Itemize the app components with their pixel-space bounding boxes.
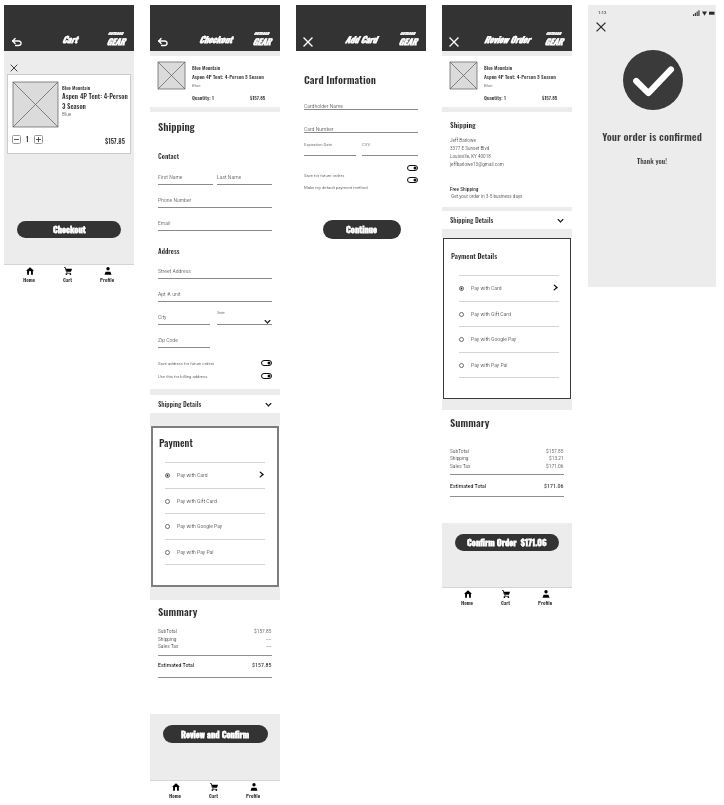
- staticText: Blue Mountain: [192, 64, 221, 71]
- staticText: 1:12: [598, 10, 607, 15]
- button[interactable]: Pay with Gift Card: [459, 301, 559, 327]
- staticText: Address: [158, 246, 180, 256]
- button[interactable]: Back: [158, 38, 168, 46]
- staticText: Apt #, unit: [158, 291, 181, 297]
- button[interactable]: Shipping Details: [442, 211, 572, 229]
- staticText: Thank you!: [637, 156, 667, 166]
- button[interactable]: Toggle: [261, 373, 272, 379]
- button[interactable]: Close: [597, 23, 605, 31]
- staticText: Save address for future orders: [158, 361, 215, 366]
- staticText: Cart: [501, 599, 511, 607]
- staticText: Pay with Pay Pal: [471, 362, 508, 368]
- staticText: $171.06: [546, 464, 564, 470]
- staticText: Cardholder Name: [304, 103, 343, 109]
- staticText: Cart: [63, 276, 73, 284]
- staticText: SubTotal: [450, 449, 469, 455]
- button[interactable]: Toggle: [407, 177, 418, 183]
- button[interactable]: Remove item: [11, 65, 17, 71]
- button[interactable]: Close: [304, 38, 312, 46]
- staticText: Continue: [346, 223, 378, 236]
- staticText: GEAR: [105, 35, 126, 47]
- staticText: Jeff Barlowe 3377 E Sunset Blvd Louisvil…: [450, 138, 504, 167]
- button[interactable]: Save address for future orders: [158, 359, 272, 367]
- button[interactable]: Toggle: [407, 165, 418, 171]
- staticText: Aspen 4P Tent: 4-Person 3 Season: [62, 91, 128, 111]
- staticText: State: [217, 311, 225, 315]
- button[interactable]: Cart: [201, 782, 227, 801]
- staticText: Zip Code: [158, 337, 178, 343]
- staticText: $171.06: [544, 483, 564, 489]
- staticText: Pay with Pay Pal: [177, 549, 214, 555]
- staticText: Shipping Details: [450, 215, 494, 225]
- button[interactable]: Home: [161, 782, 190, 801]
- staticText: First Name: [158, 174, 183, 180]
- staticText: $157.85: [546, 449, 564, 455]
- staticText: Contact: [158, 151, 179, 161]
- button[interactable]: Decrease quantity: [12, 135, 21, 144]
- button[interactable]: Profile: [92, 266, 123, 285]
- button[interactable]: Profile: [238, 782, 269, 801]
- button[interactable]: Pay with Google Pay: [459, 326, 559, 352]
- button[interactable]: Shipping Details: [150, 395, 280, 413]
- button[interactable]: Confirm Order $171.06: [455, 534, 559, 551]
- button[interactable]: Pay with Card: [165, 462, 265, 488]
- staticText: Confirm Order $171.06: [467, 536, 547, 549]
- staticText: Use this for billing address: [158, 374, 208, 379]
- staticText: $157.85: [542, 94, 558, 101]
- staticText: GEAR: [251, 35, 272, 47]
- staticText: Add Card: [345, 33, 377, 46]
- staticText: Pay with Card: [471, 285, 502, 291]
- staticText: Cart: [209, 792, 219, 800]
- button[interactable]: Home: [453, 589, 482, 608]
- staticText: Last Name: [217, 174, 242, 180]
- staticText: Pay with Google Pay: [471, 336, 517, 342]
- button[interactable]: Pay with Gift Card: [165, 488, 265, 514]
- staticText: Summary: [158, 604, 198, 619]
- staticText: ----: [266, 644, 272, 650]
- staticText: Cart: [62, 33, 77, 46]
- button[interactable]: Continue: [323, 220, 401, 239]
- staticText: Blue: [192, 83, 201, 88]
- button[interactable]: Home: [15, 266, 44, 285]
- button[interactable]: Toggle: [261, 360, 272, 366]
- staticText: $157.85: [105, 136, 125, 146]
- staticText: Checkout: [199, 33, 232, 46]
- button[interactable]: Pay with Pay Pal: [165, 539, 265, 565]
- staticText: Pay with Google Pay: [177, 523, 223, 529]
- staticText: Aspen 4P Tent: 4-Person 3 Season: [192, 73, 264, 81]
- button[interactable]: Close: [450, 38, 458, 46]
- staticText: Shipping Details: [158, 399, 202, 409]
- button[interactable]: Increase quantity: [34, 135, 43, 144]
- staticText: Home: [169, 792, 182, 800]
- staticText: $157.85: [252, 662, 272, 668]
- button[interactable]: Use this for billing address: [158, 372, 272, 380]
- staticText: OUTDOOR: [543, 31, 564, 36]
- staticText: Profile: [100, 276, 115, 284]
- staticText: Phone Number: [158, 197, 192, 203]
- button[interactable]: Pay with Pay Pal: [459, 352, 559, 378]
- button[interactable]: Cart: [493, 589, 519, 608]
- staticText: Summary: [450, 415, 490, 430]
- button[interactable]: Pay with Google Pay: [165, 513, 265, 539]
- button[interactable]: Back: [12, 38, 22, 46]
- button[interactable]: Pay with Card: [459, 275, 559, 301]
- button[interactable]: Profile: [530, 589, 561, 608]
- staticText: Email: [158, 220, 171, 226]
- staticText: Estimated Total: [450, 483, 487, 489]
- staticText: Sales Tax: [158, 644, 179, 650]
- button[interactable]: Review and Confirm: [163, 725, 268, 743]
- staticText: Blue: [62, 112, 72, 118]
- staticText: GEAR: [543, 35, 564, 47]
- staticText: Home: [461, 599, 474, 607]
- staticText: Free Shipping: [450, 187, 479, 192]
- staticText: OUTDOOR: [397, 31, 418, 36]
- button[interactable]: Cart: [55, 266, 81, 285]
- staticText: Checkout: [53, 223, 86, 236]
- staticText: City: [158, 314, 167, 320]
- staticText: Profile: [538, 599, 553, 607]
- staticText: Save for future orders: [304, 173, 345, 178]
- staticText: OUTDOOR: [251, 31, 272, 36]
- button[interactable]: Checkout: [17, 221, 121, 238]
- staticText: OUTDOOR: [105, 31, 126, 36]
- staticText: Quantity: 1: [484, 94, 506, 101]
